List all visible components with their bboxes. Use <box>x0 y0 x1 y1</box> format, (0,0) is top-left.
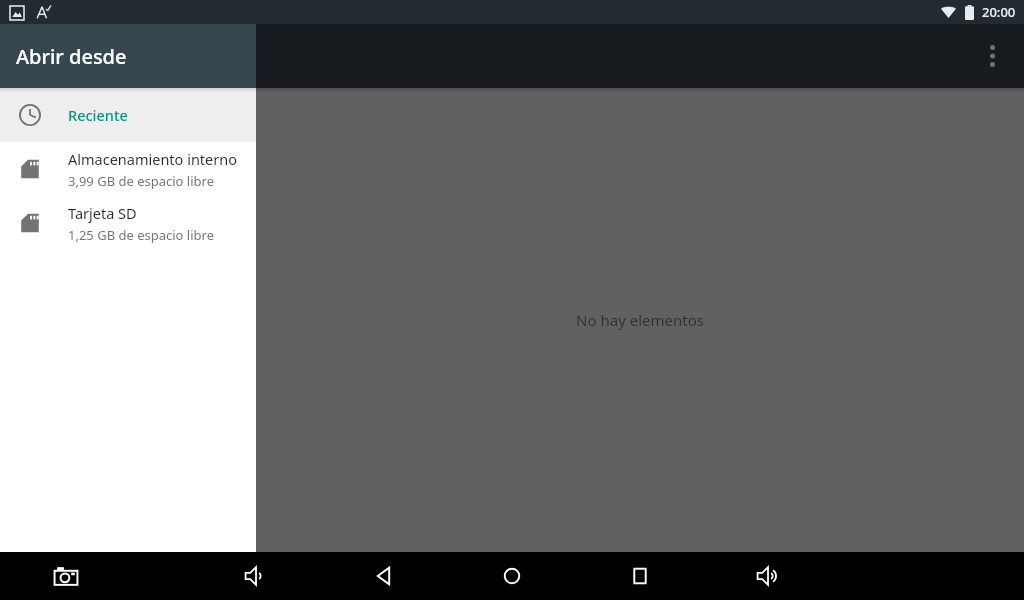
button[interactable]: Tarjeta SD <box>0 196 256 250</box>
button[interactable]: Bajar volumen <box>232 552 280 600</box>
staticText: No hay elementos <box>576 310 704 330</box>
staticText: Almacenamiento interno <box>68 149 237 169</box>
staticText: 20:00 <box>982 3 1016 21</box>
staticText: Reciente <box>68 105 128 125</box>
button[interactable]: Inicio <box>488 552 536 600</box>
button[interactable]: Subir volumen <box>744 552 792 600</box>
staticText: 1,25 GB de espacio libre <box>68 226 215 244</box>
button[interactable]: Más opciones <box>968 32 1016 80</box>
button[interactable]: Aplicaciones recientes <box>616 552 664 600</box>
staticText: 3,99 GB de espacio libre <box>68 172 215 190</box>
button[interactable]: Atrás <box>360 552 408 600</box>
staticText: Tarjeta SD <box>68 203 137 223</box>
button[interactable]: Captura de pantalla <box>42 552 90 600</box>
button[interactable]: Reciente <box>0 88 256 142</box>
button[interactable]: Almacenamiento interno <box>0 142 256 196</box>
staticText: Abrir desde <box>16 43 127 70</box>
